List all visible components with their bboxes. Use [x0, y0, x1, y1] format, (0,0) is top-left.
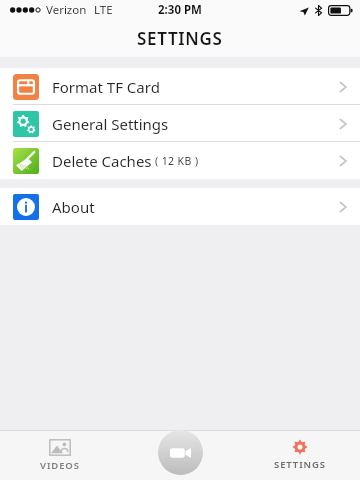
button[interactable]: Format TF Card: [0, 68, 360, 105]
button[interactable]: General Settings: [0, 105, 360, 142]
staticText: Format TF Card: [52, 77, 160, 97]
staticText: SETTINGS: [274, 458, 326, 471]
staticText: ( 12 KB ): [155, 154, 199, 168]
staticText: General Settings: [52, 114, 169, 134]
staticText: SETTINGS: [137, 27, 223, 50]
staticText: About: [52, 197, 95, 217]
button[interactable]: VIDEOS: [0, 430, 120, 480]
button[interactable]: SETTINGS: [240, 430, 360, 480]
staticText: 2:30 PM: [158, 2, 202, 18]
staticText: Delete Caches: [52, 151, 152, 171]
button[interactable]: Record video: [158, 430, 203, 475]
button[interactable]: About: [0, 188, 360, 225]
button[interactable]: Delete Caches: [0, 142, 360, 179]
staticText: VIDEOS: [40, 459, 80, 472]
staticText: LTE: [94, 2, 113, 18]
staticText: Verizon: [46, 2, 87, 18]
